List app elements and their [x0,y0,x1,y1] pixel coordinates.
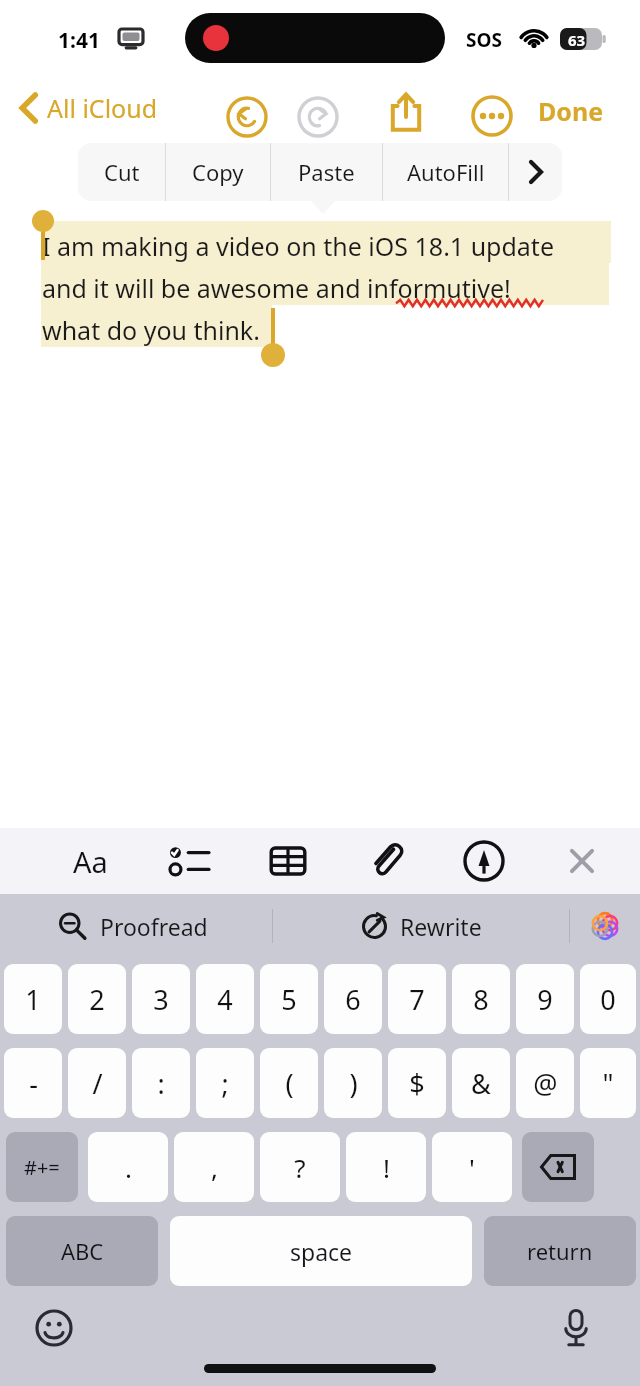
staticText: ) [349,1065,358,1102]
button[interactable]: Cut [78,143,165,201]
button[interactable]: Apple Intelligence [570,894,640,958]
button[interactable]: 7 [388,964,446,1034]
staticText: ! [383,1150,390,1185]
button[interactable]: #+= [6,1132,78,1202]
button[interactable]: Aa [60,831,120,891]
staticText: $ [409,1065,425,1102]
staticText: ( [285,1065,294,1102]
button[interactable]: 1 [4,964,62,1034]
button[interactable]: ? [260,1132,340,1202]
button[interactable]: , [174,1132,254,1202]
button[interactable]: Markup [456,833,512,889]
button[interactable]: Attach [358,833,414,889]
button[interactable]: 3 [132,964,190,1034]
staticText: what do you think. [42,313,260,347]
staticText: AutoFill [407,157,485,187]
staticText: 2 [89,981,105,1018]
button[interactable]: / [68,1048,126,1118]
button[interactable]: Done [538,94,604,128]
staticText: Rewrite [400,911,482,942]
button[interactable]: 4 [196,964,254,1034]
staticText: . [125,1150,132,1185]
button[interactable]: : [132,1048,190,1118]
staticText: ABC [61,1236,104,1266]
staticText: 9 [537,981,553,1018]
staticText: 3 [153,981,169,1018]
staticText: and it will be awesome and informutive! [42,271,511,305]
button[interactable]: ' [432,1132,512,1202]
staticText: return [527,1236,593,1266]
button[interactable]: More options [468,92,516,140]
staticText: space [290,1236,353,1267]
staticText: I am making a video on the iOS 18.1 upda… [42,229,554,263]
staticText: ? [294,1150,306,1185]
button[interactable]: Copy [166,143,270,201]
button[interactable]: 0 [580,964,636,1034]
staticText: ' [469,1150,475,1185]
button[interactable]: AutoFill [383,143,508,201]
staticText: Copy [192,157,244,187]
button[interactable]: Share [382,88,430,136]
button[interactable]: - [4,1048,62,1118]
staticText: 5 [281,981,297,1018]
staticText: : [157,1065,165,1102]
button[interactable]: All iCloud [14,80,164,136]
staticText: #+= [24,1154,60,1181]
staticText: Aa [73,842,108,881]
button[interactable]: Dictate [548,1300,604,1356]
button[interactable]: ! [346,1132,426,1202]
staticText: Cut [104,157,140,187]
staticText: " [602,1065,614,1102]
staticText: 1:41 [58,26,100,55]
staticText: Paste [298,157,355,187]
button[interactable]: Delete [522,1132,594,1202]
staticText: @ [533,1065,558,1102]
staticText: 63 [568,30,586,50]
button[interactable]: Rewrite [273,894,569,958]
staticText: / [92,1065,103,1102]
staticText: , [211,1150,218,1185]
staticText: & [471,1065,491,1102]
button[interactable]: Redo [293,92,343,142]
button[interactable]: Proofread [0,894,272,958]
staticText: SOS [466,27,502,53]
button[interactable]: . [88,1132,168,1202]
button[interactable]: return [484,1216,636,1286]
staticText: All iCloud [47,91,158,125]
button[interactable]: Close keyboard [554,833,610,889]
staticText: 7 [409,981,425,1018]
staticText: - [29,1065,38,1102]
button[interactable]: ( [260,1048,318,1118]
button[interactable]: 2 [68,964,126,1034]
button[interactable]: 9 [516,964,574,1034]
button[interactable]: & [452,1048,510,1118]
button[interactable]: space [170,1216,472,1286]
button[interactable]: @ [516,1048,574,1118]
staticText: 1 [25,981,41,1018]
button[interactable]: ; [196,1048,254,1118]
button[interactable]: " [580,1048,636,1118]
button[interactable]: 8 [452,964,510,1034]
button[interactable]: ABC [6,1216,158,1286]
button[interactable]: More [509,143,562,201]
staticText: Proofread [100,911,208,942]
button[interactable]: Undo [222,92,272,142]
staticText: 4 [217,981,233,1018]
staticText: ; [221,1065,229,1102]
button[interactable]: ) [324,1048,382,1118]
button[interactable]: 5 [260,964,318,1034]
button[interactable]: Emoji [26,1300,82,1356]
staticText: 0 [600,981,616,1018]
button[interactable]: $ [388,1048,446,1118]
staticText: 8 [473,981,489,1018]
staticText: 6 [345,981,361,1018]
button[interactable]: 6 [324,964,382,1034]
button[interactable]: Paste [271,143,382,201]
button[interactable]: Checklist [162,833,218,889]
button[interactable]: Table [260,833,316,889]
